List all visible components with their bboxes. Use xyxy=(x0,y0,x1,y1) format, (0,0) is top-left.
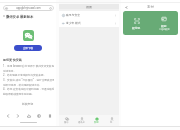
button[interactable]: Close xyxy=(2,14,6,18)
staticText: 如何更 快安装 xyxy=(3,58,22,62)
staticText: 微信 xyxy=(64,121,69,124)
staticText: 发现 xyxy=(94,121,99,124)
button[interactable]: Back xyxy=(123,4,129,10)
staticText: 收款 xyxy=(161,24,167,27)
staticText: 后即可使用，若出现授权请允许。 xyxy=(3,83,42,86)
staticText: 青少年 模式 xyxy=(66,21,81,25)
button[interactable]: Forward xyxy=(13,111,22,120)
staticText: 立即下载 xyxy=(23,47,33,50)
button[interactable]: 发现 xyxy=(89,115,104,125)
button[interactable]: 青少年 模式 xyxy=(59,19,119,27)
button[interactable]: Menu xyxy=(45,111,54,120)
staticText: 获取帮助或查阅常见问题。 xyxy=(3,92,35,95)
button[interactable]: Home xyxy=(24,111,33,120)
staticText: 3、安装完 成后 "打开微信"，进行注册或登录操作 xyxy=(3,78,54,82)
staticText: 支付 xyxy=(147,5,154,9)
staticText: 1、使用 browsrxj 浏 览器下 载此安卓安装包文件 xyxy=(3,64,54,68)
staticText: 设置 xyxy=(86,5,92,9)
button[interactable]: appgbhrjnuxwl.com xyxy=(3,5,54,11)
staticText: 账号与安全 xyxy=(66,13,80,17)
staticText: 后请等待。 xyxy=(3,69,16,72)
button[interactable]: 账号与安全 xyxy=(59,11,119,19)
button[interactable]: 收付款 xyxy=(123,11,150,35)
staticText: 二维码收款 xyxy=(159,28,170,31)
staticText: 收付款 xyxy=(132,26,141,29)
staticText: 通讯录 xyxy=(78,121,85,124)
staticText: 我 xyxy=(110,121,113,124)
button[interactable]: 收款 xyxy=(150,11,178,35)
button[interactable]: 我 xyxy=(104,115,119,125)
button[interactable]: 立即下载 xyxy=(14,45,42,51)
button[interactable]: Tabs xyxy=(34,111,43,120)
button[interactable]: 通讯录 xyxy=(74,115,89,125)
button[interactable]: 微信 xyxy=(59,115,74,125)
staticText: 4、若您 在安装过程中遇到问题，可通过联系客服 xyxy=(3,87,54,91)
staticText: 2、若出现提示请选择允许安装来源。 xyxy=(3,73,46,77)
staticText: appgbhrjnuxwl.com xyxy=(8,6,49,10)
staticText: 微信安卓 最新版本 xyxy=(6,14,34,19)
staticText: 版权声明 xyxy=(22,102,34,106)
button[interactable]: Back xyxy=(3,111,12,120)
